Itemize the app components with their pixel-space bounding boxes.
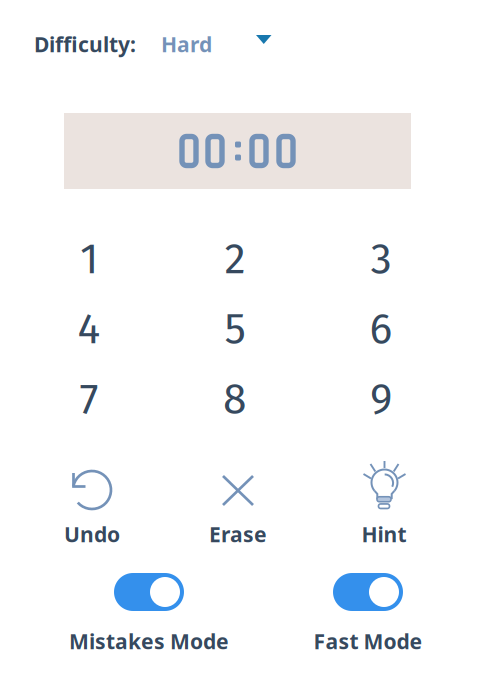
button[interactable]: Erase bbox=[188, 459, 288, 545]
staticText: 3 bbox=[370, 233, 391, 285]
button[interactable]: 8 bbox=[185, 364, 285, 434]
button[interactable]: 7 bbox=[39, 364, 139, 434]
button[interactable]: 4 bbox=[39, 294, 139, 364]
staticText: 4 bbox=[77, 303, 100, 355]
staticText: 2 bbox=[224, 233, 245, 285]
staticText: Difficulty: bbox=[34, 30, 136, 58]
staticText: Fast Mode bbox=[313, 627, 422, 655]
button[interactable]: Hard bbox=[161, 30, 271, 58]
staticText: Hint bbox=[361, 520, 406, 548]
button[interactable]: 6 bbox=[331, 294, 431, 364]
staticText: 7 bbox=[79, 373, 98, 425]
button[interactable]: Undo bbox=[42, 459, 142, 545]
staticText: 8 bbox=[223, 373, 247, 425]
staticText: Erase bbox=[209, 520, 267, 548]
button[interactable]: 1 bbox=[39, 224, 139, 294]
staticText: 6 bbox=[369, 303, 392, 355]
staticText: Undo bbox=[64, 520, 120, 548]
button[interactable]: 3 bbox=[331, 224, 431, 294]
staticText: Hard bbox=[161, 30, 212, 58]
staticText: 5 bbox=[224, 303, 245, 355]
button[interactable]: 2 bbox=[185, 224, 285, 294]
staticText: 9 bbox=[370, 373, 392, 425]
button[interactable]: 9 bbox=[331, 364, 431, 434]
staticText: 1 bbox=[80, 233, 98, 285]
button[interactable]: Fast Mode bbox=[268, 573, 468, 652]
button[interactable]: Mistakes Mode bbox=[49, 573, 249, 652]
button[interactable]: 5 bbox=[185, 294, 285, 364]
button[interactable]: Hint bbox=[334, 459, 434, 545]
staticText: Mistakes Mode bbox=[69, 627, 229, 655]
